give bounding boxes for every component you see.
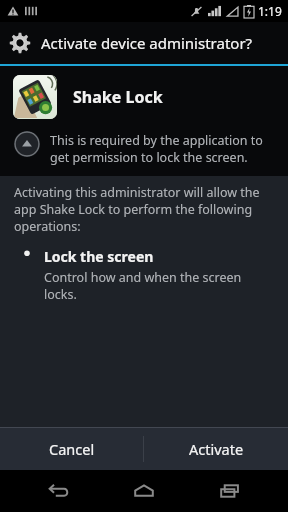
staticText: Shake Lock <box>73 86 163 108</box>
button[interactable]: Cancel <box>0 428 143 470</box>
button[interactable]: Recent apps <box>202 470 258 512</box>
staticText: Control how and when the screen locks. <box>44 269 270 303</box>
staticText: Lock the screen <box>44 247 154 266</box>
button[interactable]: Activate <box>144 428 288 470</box>
staticText: Cancel <box>49 439 95 459</box>
staticText: Activating this administrator will allow… <box>14 184 272 235</box>
staticText: 1:19 <box>258 3 282 19</box>
button[interactable]: Back <box>30 470 86 512</box>
staticText: Activate device administrator? <box>41 33 253 53</box>
staticText: This is required by the application to g… <box>50 132 272 166</box>
staticText: Activate <box>189 439 244 459</box>
button[interactable]: Collapse details <box>14 131 40 157</box>
button[interactable]: Home <box>116 470 172 512</box>
